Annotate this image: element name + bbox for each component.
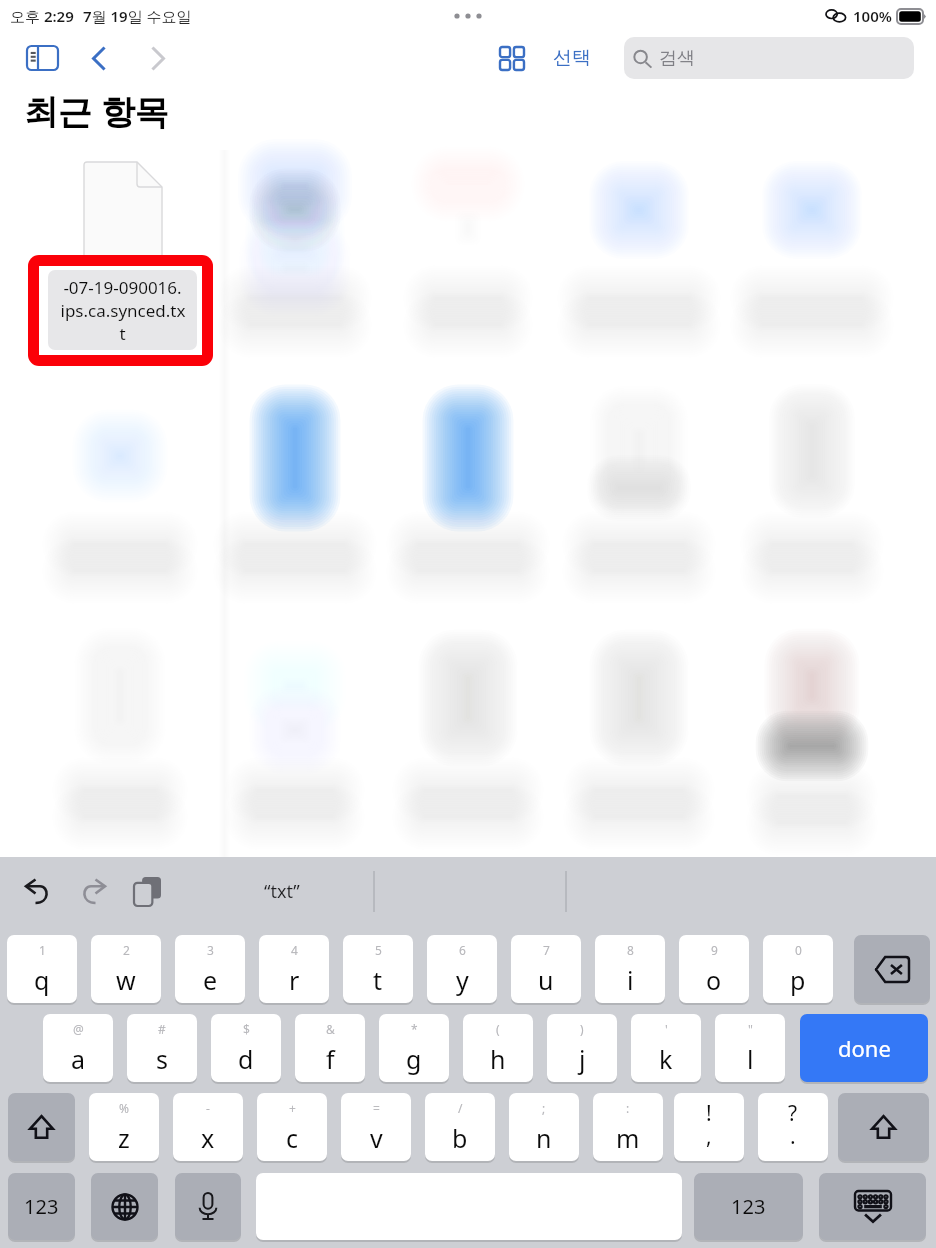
button[interactable]: & — [295, 1014, 365, 1082]
button[interactable]: ( — [463, 1014, 533, 1082]
staticText: 6 — [459, 942, 466, 958]
button[interactable]: : — [593, 1093, 663, 1161]
button[interactable]: = — [341, 1093, 411, 1161]
staticText: 4 — [291, 942, 298, 958]
button[interactable]: Toggle sidebar — [22, 38, 62, 78]
staticText: & — [326, 1021, 335, 1037]
staticText: u — [538, 963, 554, 997]
staticText: * — [411, 1021, 418, 1037]
staticText: 123 — [24, 1193, 59, 1220]
other: Backspace — [875, 957, 909, 982]
button[interactable]: @ — [43, 1014, 113, 1082]
staticText: ' — [665, 1021, 668, 1037]
button[interactable]: Undo — [14, 868, 60, 914]
staticText: 0 — [795, 942, 802, 958]
staticText: q — [34, 963, 50, 997]
other: Hide keyboard — [819, 1173, 926, 1240]
staticText: . — [790, 1122, 796, 1151]
button[interactable]: Paste — [124, 868, 170, 914]
button[interactable]: ! — [674, 1093, 744, 1161]
staticText: 3 — [207, 942, 214, 958]
button[interactable]: Grid view — [492, 38, 532, 78]
other: Shift — [28, 1115, 55, 1140]
staticText: 오후 2:29 — [10, 6, 74, 26]
button[interactable]: ) — [547, 1014, 617, 1082]
staticText: e — [203, 963, 218, 997]
staticText: 최근 항목 — [24, 88, 169, 134]
staticText: t — [373, 963, 383, 997]
button[interactable]: Shift — [8, 1093, 75, 1161]
button[interactable]: " — [715, 1014, 785, 1082]
staticText: m — [616, 1121, 640, 1155]
other: Dictation — [175, 1173, 241, 1240]
staticText: % — [119, 1100, 129, 1116]
staticText: b — [452, 1121, 468, 1155]
staticText: 검색 — [659, 47, 695, 70]
staticText: -07-19-090016. — [63, 276, 182, 299]
staticText: r — [289, 963, 300, 997]
staticText: ; — [542, 1100, 546, 1116]
button[interactable]: done — [800, 1014, 928, 1082]
staticText: , — [706, 1122, 712, 1151]
staticText: 100% — [853, 6, 892, 26]
staticText: f — [326, 1042, 335, 1076]
button[interactable]: 1 — [7, 935, 77, 1003]
button[interactable]: 4 — [259, 935, 329, 1003]
button[interactable]: / — [425, 1093, 495, 1161]
button[interactable]: 3 — [175, 935, 245, 1003]
staticText: # — [158, 1021, 166, 1037]
button[interactable]: ; — [509, 1093, 579, 1161]
staticText: k — [659, 1042, 673, 1076]
button[interactable]: 0 — [763, 935, 833, 1003]
staticText: ) — [580, 1021, 584, 1037]
button[interactable]: Change keyboard — [91, 1173, 158, 1240]
staticText: $ — [243, 1021, 250, 1037]
staticText: 9 — [711, 942, 718, 958]
button[interactable]: Backspace — [854, 935, 930, 1003]
staticText: x — [201, 1121, 215, 1155]
staticText: c — [286, 1121, 299, 1155]
staticText: g — [406, 1042, 422, 1076]
button[interactable]: 2 — [91, 935, 161, 1003]
other: Shift — [870, 1115, 897, 1140]
button[interactable]: Back — [78, 38, 118, 78]
button[interactable]: Hide keyboard — [819, 1173, 926, 1240]
button[interactable]: Dictation — [175, 1173, 241, 1240]
staticText: o — [706, 963, 722, 997]
button[interactable]: # — [127, 1014, 197, 1082]
staticText: + — [289, 1100, 296, 1116]
button[interactable]: 선택 — [547, 40, 597, 76]
button[interactable]: 7 — [511, 935, 581, 1003]
button[interactable]: “txt” — [192, 868, 372, 914]
staticText: t — [119, 322, 126, 345]
button[interactable]: 5 — [343, 935, 413, 1003]
button[interactable]: Forward — [138, 38, 178, 78]
button[interactable]: 9 — [679, 935, 749, 1003]
button[interactable]: ' — [631, 1014, 701, 1082]
button[interactable]: - — [173, 1093, 243, 1161]
staticText: - — [206, 1100, 210, 1116]
staticText: ips.ca.synced.tx — [60, 299, 186, 322]
button[interactable]: 검색 — [624, 37, 914, 79]
staticText: h — [490, 1042, 506, 1076]
button[interactable]: Shift — [838, 1093, 929, 1161]
staticText: a — [71, 1042, 86, 1076]
staticText: j — [579, 1042, 586, 1076]
staticText: 2 — [123, 942, 130, 958]
button[interactable]: 6 — [427, 935, 497, 1003]
button[interactable]: * — [379, 1014, 449, 1082]
staticText: n — [536, 1121, 552, 1155]
button[interactable]: Redo — [70, 868, 116, 914]
staticText: z — [118, 1121, 130, 1155]
staticText: done — [838, 1033, 891, 1063]
button[interactable]: 123 — [694, 1173, 803, 1240]
button[interactable]: % — [89, 1093, 159, 1161]
staticText: p — [790, 963, 806, 997]
button[interactable]: $ — [211, 1014, 281, 1082]
button[interactable]: 123 — [8, 1173, 75, 1240]
button[interactable]: ? — [758, 1093, 828, 1161]
button[interactable]: 8 — [595, 935, 665, 1003]
button[interactable]: + — [257, 1093, 327, 1161]
